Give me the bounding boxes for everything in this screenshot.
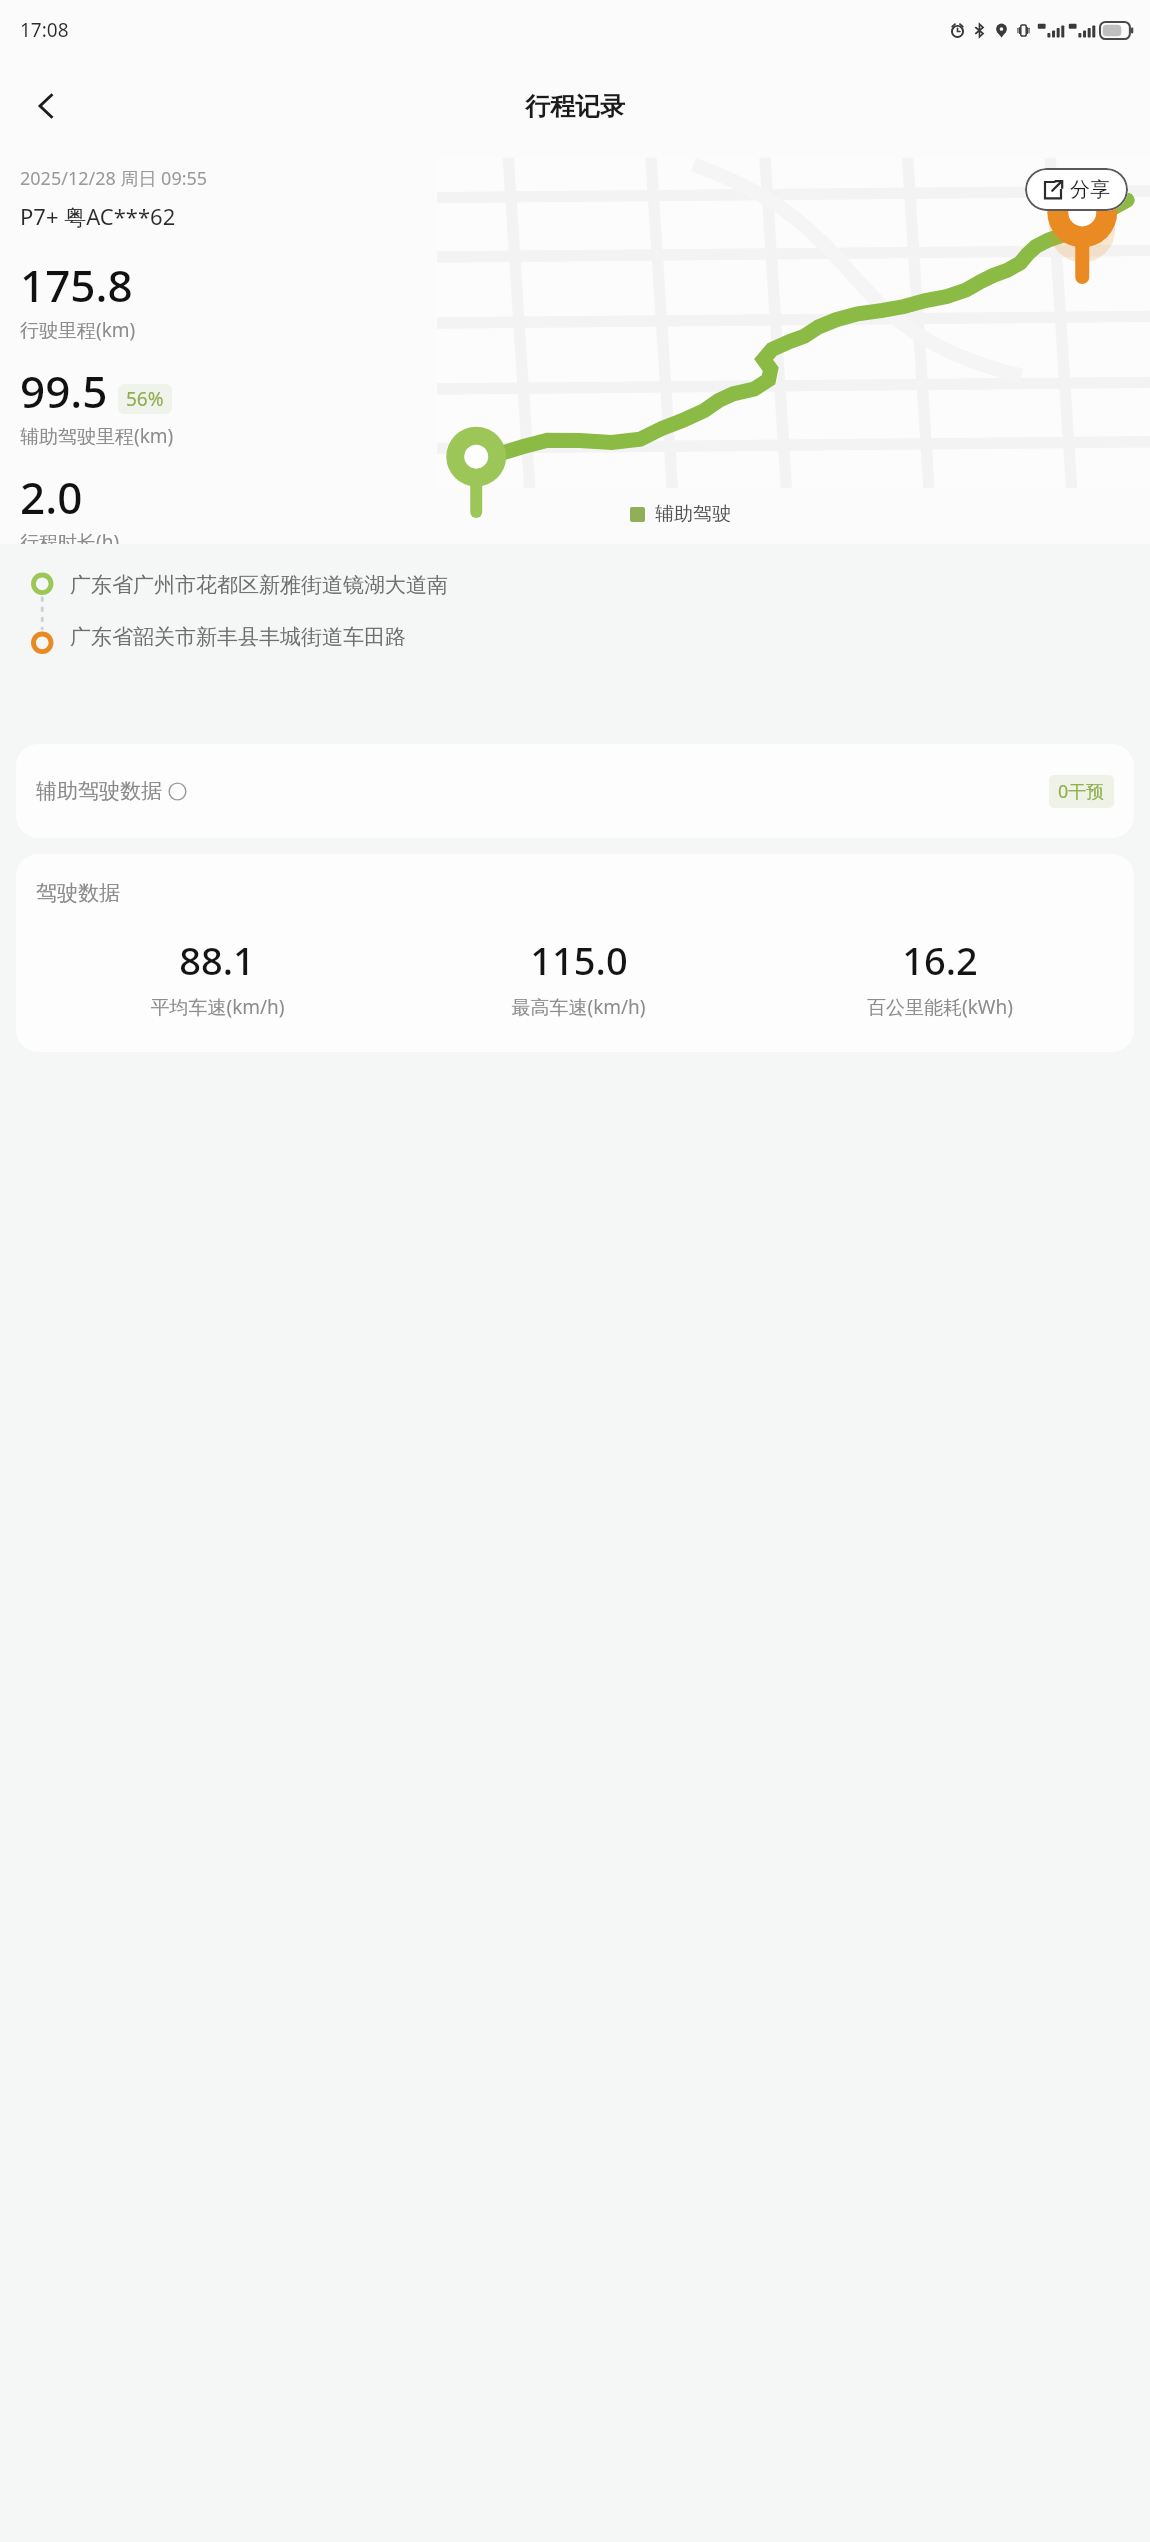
staticText: 广东省韶关市新丰县丰城街道车田路 [70,624,406,650]
button[interactable]: 辅助驾驶数据 [16,744,1134,838]
staticText: 最高车速(km/h) [511,994,646,1020]
staticText: 88.1 [179,934,255,986]
staticText: 16.2 [902,934,978,986]
button[interactable]: 分享 [1025,168,1128,211]
staticText: 99.5 [20,361,108,421]
staticText: 辅助驾驶 [655,502,731,526]
button[interactable]: 驾驶数据 [16,854,1134,1052]
staticText: 2025/12/28 周日 09:55 [20,166,208,191]
staticText: 行程记录 [525,91,625,122]
staticText: 辅助驾驶里程(km) [20,423,174,449]
staticText: 17:08 [20,17,69,43]
staticText: 行驶里程(km) [20,317,136,343]
staticText: 56% [126,386,164,412]
staticText: 广东省广州市花都区新雅街道镜湖大道南 [70,572,448,598]
staticText: 行程时长(h) [20,529,120,544]
staticText: 辅助驾驶数据 [36,778,162,804]
staticText: 分享 [1070,177,1110,202]
staticText: P7+ 粤AC***62 [20,201,176,231]
staticText: 0干预 [1058,779,1105,804]
staticText: 175.8 [20,255,133,315]
staticText: 2.0 [20,467,83,527]
button[interactable]: Back [10,70,82,142]
staticText: 115.0 [530,934,628,986]
staticText: 驾驶数据 [36,880,120,906]
staticText: 百公里能耗(kWh) [867,994,1013,1020]
staticText: 平均车速(km/h) [150,994,285,1020]
